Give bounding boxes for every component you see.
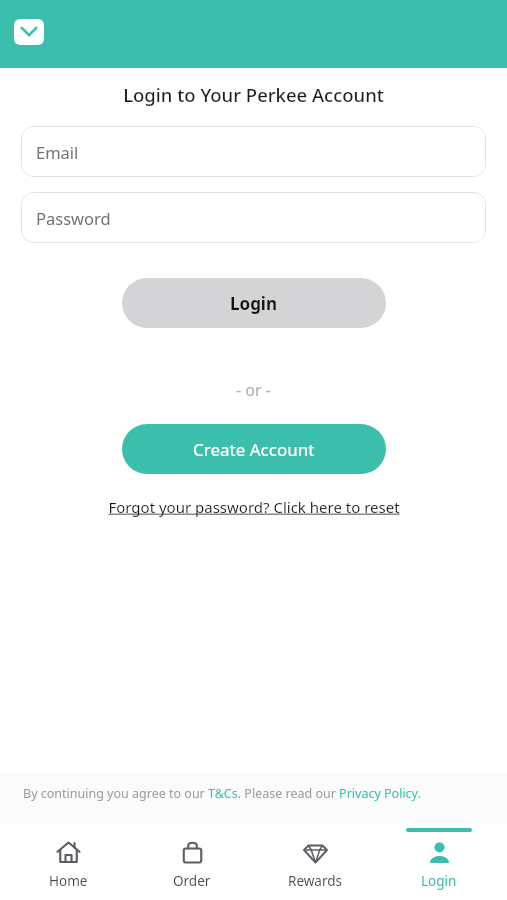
button[interactable]: Create Account	[122, 424, 386, 474]
button[interactable]: Home	[12, 824, 124, 900]
staticText: Login	[421, 872, 457, 890]
button[interactable]: Order	[136, 824, 248, 900]
button[interactable]: Login	[383, 824, 495, 900]
staticText: Login to Your Perkee Account	[0, 82, 507, 107]
button[interactable]: Forgot your password? Click here to rese…	[0, 497, 507, 517]
button[interactable]: By continuing you agree to our T&Cs. Ple…	[23, 785, 487, 802]
staticText: By continuing you agree to our T&Cs. Ple…	[23, 785, 421, 802]
staticText: Login	[230, 292, 278, 315]
staticText: Home	[49, 872, 88, 890]
staticText: Order	[173, 872, 211, 890]
button[interactable]: Login	[122, 278, 386, 328]
button[interactable]: Perkee logo	[14, 19, 44, 45]
button[interactable]: Password	[21, 192, 486, 243]
button[interactable]: Email	[21, 126, 486, 177]
button[interactable]: Rewards	[259, 824, 371, 900]
staticText: Rewards	[288, 872, 342, 890]
staticText: - or -	[0, 379, 507, 401]
staticText: Forgot your password? Click here to rese…	[108, 497, 400, 517]
staticText: Password	[36, 207, 111, 229]
staticText: Create Account	[193, 438, 315, 461]
staticText: Email	[36, 141, 79, 163]
